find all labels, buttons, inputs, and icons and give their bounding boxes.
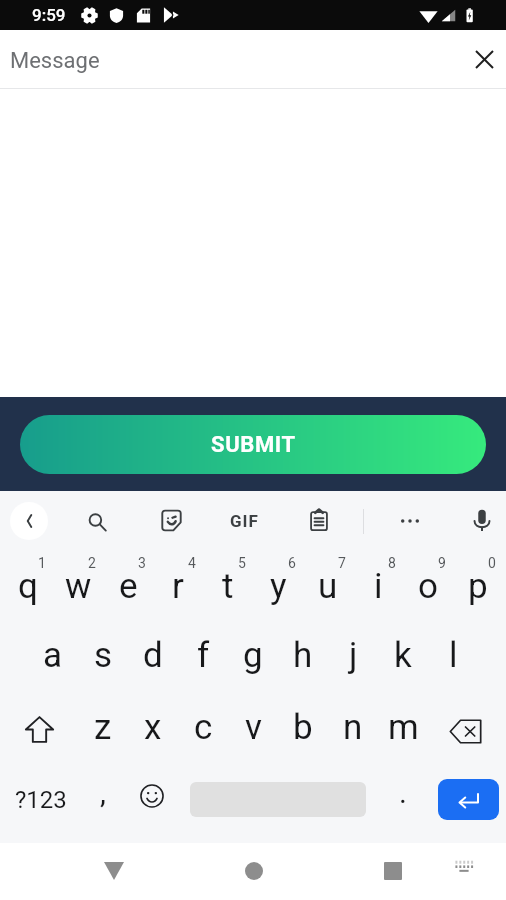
staticText: a	[43, 635, 63, 676]
button[interactable]: .	[378, 763, 428, 829]
staticText: v	[245, 707, 262, 748]
button[interactable]: v	[228, 694, 278, 760]
button[interactable]: f	[178, 622, 228, 688]
button[interactable]: y	[253, 553, 303, 619]
staticText: Message	[10, 48, 100, 74]
staticText: 6	[288, 555, 296, 571]
button[interactable]: p	[453, 553, 503, 619]
button[interactable]: s	[78, 622, 128, 688]
button[interactable]: b	[278, 694, 328, 760]
button[interactable]: j	[328, 622, 378, 688]
staticText: 0	[488, 555, 496, 571]
button[interactable]: x	[128, 694, 178, 760]
staticText: m	[388, 707, 419, 748]
button[interactable]: n	[328, 694, 378, 760]
button[interactable]: Home	[230, 847, 278, 895]
button[interactable]: g	[228, 622, 278, 688]
staticText: z	[94, 707, 112, 748]
button[interactable]: Backspace	[428, 694, 506, 760]
button[interactable]: w	[53, 553, 103, 619]
staticText: ,	[100, 775, 106, 810]
button[interactable]: Switch keyboard	[448, 850, 480, 882]
button[interactable]: l	[428, 622, 478, 688]
button[interactable]: More options	[388, 499, 432, 543]
staticText: 8	[388, 555, 396, 571]
staticText: e	[119, 566, 138, 607]
button[interactable]: Enter	[438, 779, 499, 820]
staticText: q	[18, 566, 38, 607]
staticText: ?123	[15, 786, 67, 814]
button[interactable]: Emoji	[126, 763, 178, 829]
button[interactable]: Stickers	[149, 498, 193, 542]
staticText: b	[293, 707, 313, 748]
button[interactable]: SUBMIT	[20, 415, 486, 474]
staticText: t	[222, 566, 234, 607]
button[interactable]: h	[278, 622, 328, 688]
staticText: l	[449, 635, 458, 676]
button[interactable]: Clipboard	[297, 498, 341, 542]
staticText: 7	[338, 555, 346, 571]
staticText: h	[293, 635, 313, 676]
button[interactable]: e	[103, 553, 153, 619]
staticText: x	[144, 707, 162, 748]
staticText: k	[394, 635, 412, 676]
staticText: 4	[188, 555, 196, 571]
button[interactable]: Voice input	[460, 498, 504, 542]
button[interactable]: a	[28, 622, 78, 688]
button[interactable]: t	[203, 553, 253, 619]
button[interactable]: q	[3, 553, 53, 619]
staticText: u	[318, 566, 338, 607]
staticText: GIF	[230, 511, 259, 531]
staticText: n	[343, 707, 363, 748]
button[interactable]: Close	[460, 35, 506, 83]
button[interactable]: Search	[75, 500, 119, 544]
button[interactable]: m	[378, 694, 428, 760]
staticText: SUBMIT	[211, 432, 296, 458]
staticText: y	[270, 566, 287, 607]
button[interactable]: d	[128, 622, 178, 688]
staticText: .	[399, 775, 407, 810]
button[interactable]: c	[178, 694, 228, 760]
button[interactable]: z	[78, 694, 128, 760]
staticText: f	[197, 635, 210, 676]
staticText: 9:59	[32, 5, 66, 25]
button[interactable]: Recent apps	[369, 847, 417, 895]
staticText: p	[468, 566, 488, 607]
button[interactable]: i	[353, 553, 403, 619]
staticText: w	[65, 566, 92, 607]
staticText: g	[243, 635, 263, 676]
staticText: 2	[88, 555, 96, 571]
button[interactable]: Shift	[0, 694, 78, 760]
staticText: d	[143, 635, 163, 676]
staticText: 3	[138, 555, 146, 571]
button[interactable]: k	[378, 622, 428, 688]
staticText: r	[172, 566, 184, 607]
staticText: s	[94, 635, 113, 676]
button[interactable]: u	[303, 553, 353, 619]
button[interactable]: ?123	[0, 763, 80, 829]
staticText: o	[418, 566, 438, 607]
staticText: 1	[38, 555, 46, 571]
staticText: i	[374, 566, 383, 607]
staticText: c	[194, 707, 213, 748]
button[interactable]: o	[403, 553, 453, 619]
staticText: 5	[238, 555, 246, 571]
staticText: 9	[438, 555, 446, 571]
staticText: j	[349, 635, 358, 676]
button[interactable]: Back	[90, 847, 138, 895]
button[interactable]: GIF	[224, 501, 264, 541]
button[interactable]: r	[153, 553, 203, 619]
button[interactable]: ,	[80, 763, 126, 829]
button[interactable]: Back	[10, 502, 48, 540]
